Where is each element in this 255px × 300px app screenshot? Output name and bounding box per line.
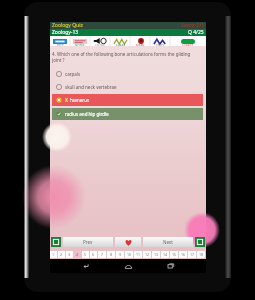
button[interactable]: Next	[143, 237, 193, 247]
staticText: Zoology-13	[52, 29, 79, 36]
staticText: 10	[127, 252, 132, 257]
button[interactable]: Favourite	[115, 237, 141, 247]
staticText: Score: 0/1	[181, 22, 205, 29]
button[interactable]: 5	[82, 251, 89, 258]
staticText: 4	[76, 252, 79, 257]
button[interactable]: 7	[98, 251, 106, 258]
staticText: 18	[199, 252, 204, 257]
button[interactable]: Back	[79, 259, 93, 273]
button[interactable]: Recents	[164, 259, 178, 273]
staticText: 17	[190, 252, 195, 257]
button[interactable]: Zoology Quiz	[50, 22, 206, 29]
staticText: 5	[84, 252, 87, 257]
button[interactable]: 8	[107, 251, 115, 258]
staticText: SUBMIT	[182, 44, 194, 46]
button[interactable]: Stats	[151, 36, 169, 46]
button[interactable]: 17	[188, 251, 196, 258]
staticText: 4. Which one of the following bone artic…	[52, 51, 204, 64]
staticText: NOTES	[75, 44, 85, 46]
staticText: 16	[181, 252, 186, 257]
staticText: 9	[119, 252, 122, 257]
staticText: 1	[52, 252, 55, 257]
button[interactable]: skull and neck vertebrae	[52, 81, 203, 93]
button[interactable]: 1	[50, 251, 57, 258]
button[interactable]: 2	[58, 251, 65, 258]
staticText: Q 4/25	[188, 29, 204, 36]
staticText: X	[65, 97, 70, 103]
staticText: 7	[101, 252, 104, 257]
button[interactable]: Share	[111, 36, 129, 46]
staticText: LISTEN	[95, 44, 105, 46]
staticText: Zoology Quiz	[52, 22, 83, 29]
staticText: 6	[92, 252, 95, 257]
button[interactable]: 12	[143, 251, 151, 258]
staticText: STATS	[156, 44, 165, 46]
staticText: SHARE	[116, 44, 126, 46]
staticText: 14	[163, 252, 168, 257]
button[interactable]: 3	[66, 251, 73, 258]
staticText: 11	[136, 252, 141, 257]
staticText: 12	[145, 252, 150, 257]
staticText: MARK	[136, 44, 145, 46]
button[interactable]: 15	[170, 251, 178, 258]
button[interactable]: carpals	[52, 68, 203, 80]
staticText: radius and hip girdle	[65, 111, 109, 117]
button[interactable]: X	[52, 94, 203, 106]
staticText: 2	[60, 252, 63, 257]
button[interactable]: 13	[152, 251, 160, 258]
button[interactable]: 18	[197, 251, 205, 258]
button[interactable]: 9	[116, 251, 124, 258]
button[interactable]: Dictionary	[51, 36, 69, 46]
staticText: carpals	[65, 71, 81, 77]
button[interactable]: Last question	[195, 237, 205, 247]
button[interactable]: First question	[51, 237, 61, 247]
staticText: DICT	[57, 44, 64, 46]
button[interactable]: Home	[121, 259, 135, 273]
staticText: skull and neck vertebrae	[65, 84, 117, 90]
staticText: Prev	[83, 239, 93, 245]
button[interactable]: 14	[161, 251, 169, 258]
button[interactable]: radius and hip girdle	[52, 108, 203, 120]
button[interactable]: Zoology-13	[50, 29, 206, 36]
staticText: Next	[163, 239, 173, 245]
button[interactable]: Submit	[171, 36, 205, 46]
staticText: 8	[110, 252, 113, 257]
staticText: 15	[172, 252, 177, 257]
button[interactable]: 10	[125, 251, 133, 258]
button[interactable]: 16	[179, 251, 187, 258]
button[interactable]: Bookmark	[131, 36, 149, 46]
button[interactable]: 4	[74, 251, 81, 258]
button[interactable]: Notes	[71, 36, 89, 46]
staticText: humerus	[70, 97, 90, 103]
button[interactable]: Listen	[91, 36, 109, 46]
button[interactable]: 11	[134, 251, 142, 258]
staticText: 3	[68, 252, 71, 257]
button[interactable]: 6	[90, 251, 97, 258]
staticText: 13	[154, 252, 159, 257]
button[interactable]: Prev	[63, 237, 113, 247]
